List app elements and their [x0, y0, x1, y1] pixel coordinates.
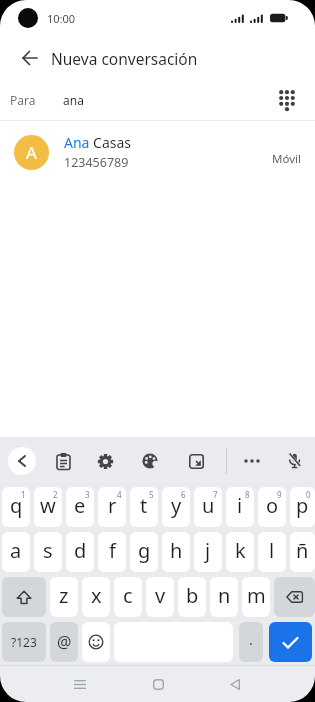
- staticText: 9: [277, 489, 282, 500]
- button[interactable]: b: [178, 577, 206, 617]
- button[interactable]: l: [258, 532, 286, 572]
- staticText: 6: [181, 489, 186, 500]
- staticText: Para: [10, 92, 36, 108]
- button[interactable]: Para: [10, 80, 299, 120]
- staticText: 123456789: [64, 154, 129, 171]
- staticText: p: [296, 492, 309, 519]
- button[interactable]: m: [242, 577, 270, 617]
- staticText: 4: [117, 489, 122, 500]
- button[interactable]: w: [34, 487, 62, 527]
- staticText: Móvil: [272, 151, 301, 167]
- button[interactable]: d: [66, 532, 94, 572]
- staticText: 3: [85, 489, 90, 500]
- staticText: 7: [213, 489, 218, 500]
- staticText: 5: [149, 489, 154, 500]
- button[interactable]: f: [98, 532, 126, 572]
- button[interactable]: i: [226, 487, 254, 527]
- staticText: q: [10, 492, 23, 519]
- button[interactable]: o: [258, 487, 286, 527]
- button[interactable]: [89, 445, 121, 477]
- button[interactable]: [275, 88, 299, 112]
- button[interactable]: y: [162, 487, 190, 527]
- staticText: s: [43, 537, 53, 564]
- button[interactable]: q: [2, 487, 30, 527]
- staticText: ?123: [11, 634, 37, 650]
- button[interactable]: e: [66, 487, 94, 527]
- button[interactable]: p: [290, 487, 315, 527]
- button[interactable]: A: [14, 121, 301, 183]
- staticText: n: [218, 582, 231, 609]
- staticText: u: [202, 492, 215, 519]
- staticText: t: [140, 492, 148, 519]
- button[interactable]: [2, 577, 46, 617]
- staticText: r: [108, 492, 117, 519]
- button[interactable]: h: [162, 532, 190, 572]
- staticText: l: [269, 537, 275, 564]
- staticText: b: [186, 582, 199, 609]
- button[interactable]: g: [130, 532, 158, 572]
- button[interactable]: t: [130, 487, 158, 527]
- staticText: h: [170, 537, 183, 564]
- staticText: 2: [53, 489, 58, 500]
- button[interactable]: v: [146, 577, 174, 617]
- button[interactable]: s: [34, 532, 62, 572]
- staticText: 0: [306, 489, 311, 500]
- button[interactable]: [68, 672, 92, 696]
- staticText: ana: [63, 92, 84, 108]
- button[interactable]: u: [194, 487, 222, 527]
- button[interactable]: @: [50, 622, 78, 662]
- staticText: x: [91, 582, 102, 609]
- button[interactable]: k: [226, 532, 254, 572]
- button[interactable]: [8, 447, 36, 475]
- button[interactable]: j: [194, 532, 222, 572]
- button[interactable]: ?123: [2, 622, 46, 662]
- staticText: i: [237, 492, 243, 519]
- staticText: 10:00: [47, 11, 76, 26]
- staticText: c: [123, 582, 133, 609]
- staticText: w: [40, 492, 56, 519]
- button[interactable]: [12, 40, 48, 76]
- staticText: f: [109, 537, 116, 564]
- staticText: m: [247, 582, 266, 609]
- button[interactable]: [278, 445, 310, 477]
- button[interactable]: [274, 577, 315, 617]
- staticText: g: [138, 537, 151, 564]
- button[interactable]: [269, 622, 312, 662]
- staticText: Ana Casas: [64, 133, 132, 152]
- button[interactable]: [47, 445, 79, 477]
- staticText: 8: [245, 489, 250, 500]
- staticText: j: [205, 537, 211, 564]
- button[interactable]: a: [2, 532, 30, 572]
- staticText: o: [266, 492, 279, 519]
- button[interactable]: r: [98, 487, 126, 527]
- button[interactable]: n: [210, 577, 238, 617]
- button[interactable]: [180, 445, 212, 477]
- button[interactable]: [82, 622, 110, 662]
- staticText: k: [235, 537, 246, 564]
- staticText: 1: [21, 489, 26, 500]
- button[interactable]: [134, 445, 166, 477]
- button[interactable]: x: [82, 577, 110, 617]
- staticText: y: [171, 492, 182, 519]
- button[interactable]: [236, 445, 268, 477]
- staticText: A: [26, 141, 37, 164]
- staticText: ñ: [296, 537, 309, 564]
- button[interactable]: .: [239, 622, 263, 662]
- button[interactable]: ñ: [290, 532, 315, 572]
- button[interactable]: c: [114, 577, 142, 617]
- button[interactable]: z: [50, 577, 78, 617]
- button[interactable]: [223, 672, 247, 696]
- staticText: d: [74, 537, 87, 564]
- staticText: z: [59, 582, 69, 609]
- staticText: Nueva conversación: [51, 48, 198, 69]
- staticText: a: [10, 537, 22, 564]
- staticText: e: [74, 492, 86, 519]
- staticText: .: [249, 630, 253, 649]
- staticText: v: [155, 582, 166, 609]
- button[interactable]: [146, 672, 170, 696]
- staticText: @: [57, 631, 72, 653]
